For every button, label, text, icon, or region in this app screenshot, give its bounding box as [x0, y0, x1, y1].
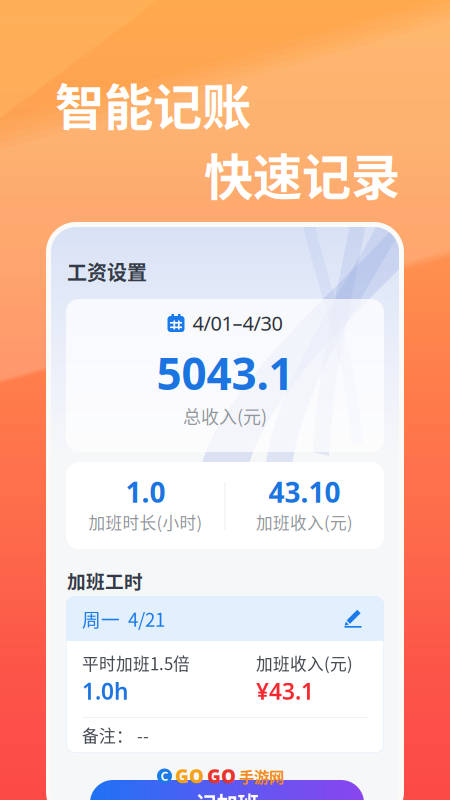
staticText: GO — [175, 764, 204, 788]
staticText: C — [160, 768, 168, 784]
staticText: 1.0 — [125, 473, 165, 511]
staticText: 备注： -- — [82, 723, 149, 747]
staticText: 加班工时 — [67, 567, 143, 594]
staticText: 加班时长(小时) — [88, 510, 202, 534]
staticText: 4/01–4/30 — [192, 310, 282, 336]
staticText: 周一 4/21 — [82, 605, 165, 632]
button[interactable]: 周一 4/21 — [66, 596, 384, 641]
staticText: ¥43.1 — [256, 676, 314, 706]
staticText: GO — [207, 764, 236, 788]
staticText: 加班收入(元) — [256, 651, 353, 675]
staticText: 快速记录 — [204, 138, 400, 209]
staticText: 43.10 — [268, 473, 340, 511]
staticText: 手游网 — [239, 765, 284, 787]
staticText: 平时加班1.5倍 — [82, 651, 190, 675]
staticText: 智能记账 — [55, 68, 251, 139]
button[interactable]: 记加班 — [90, 780, 364, 800]
staticText: 5043.1 — [156, 344, 293, 402]
staticText: 加班收入(元) — [256, 510, 353, 534]
staticText: 记加班 — [195, 788, 258, 800]
staticText: 工资设置 — [67, 257, 147, 286]
staticText: 总收入(元) — [183, 403, 267, 429]
staticText: 1.0h — [82, 676, 128, 706]
